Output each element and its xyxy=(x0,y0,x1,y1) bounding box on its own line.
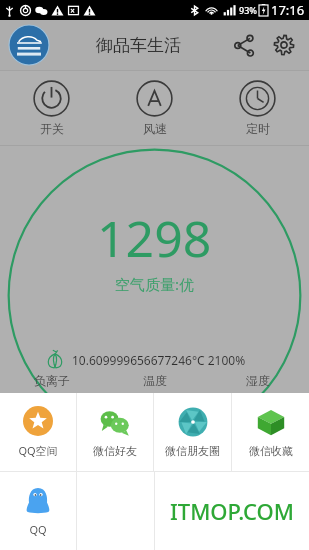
button[interactable]: QQ xyxy=(0,472,76,550)
button[interactable]: 微信朋友圈 xyxy=(154,393,231,471)
staticText: 御品车生活 xyxy=(96,35,181,56)
button[interactable]: 开关 xyxy=(0,71,103,145)
staticText: QQ xyxy=(29,522,47,537)
staticText: 1298 xyxy=(97,204,212,272)
button[interactable]: 风速 xyxy=(103,71,206,145)
staticText: 微信收藏 xyxy=(249,444,293,458)
staticText: QQ空间 xyxy=(18,443,58,458)
staticText: 17:16 xyxy=(271,1,305,19)
staticText: 空气质量:优 xyxy=(115,274,195,294)
staticText: 10.609999656677246°C 2100% xyxy=(72,352,246,368)
button[interactable]: 微信收藏 xyxy=(232,393,309,471)
staticText: 温度 xyxy=(143,373,167,388)
button[interactable]: 微信好友 xyxy=(77,393,153,471)
staticText: 微信朋友圈 xyxy=(165,444,220,458)
staticText: 微信好友 xyxy=(93,444,137,458)
staticText: 93% xyxy=(239,4,257,16)
staticText: 风速 xyxy=(143,121,167,136)
staticText: 开关 xyxy=(40,121,64,136)
button[interactable]: 定时 xyxy=(206,71,309,145)
staticText: ITMOP.COM xyxy=(170,496,295,526)
staticText: 定时 xyxy=(246,121,270,136)
button[interactable]: Share xyxy=(227,28,261,62)
staticText: 负离子 xyxy=(34,373,70,388)
button[interactable]: Settings xyxy=(267,28,301,62)
button[interactable]: QQ空间 xyxy=(0,393,76,471)
button[interactable]: Logo xyxy=(8,24,50,66)
staticText: 湿度 xyxy=(246,373,270,388)
